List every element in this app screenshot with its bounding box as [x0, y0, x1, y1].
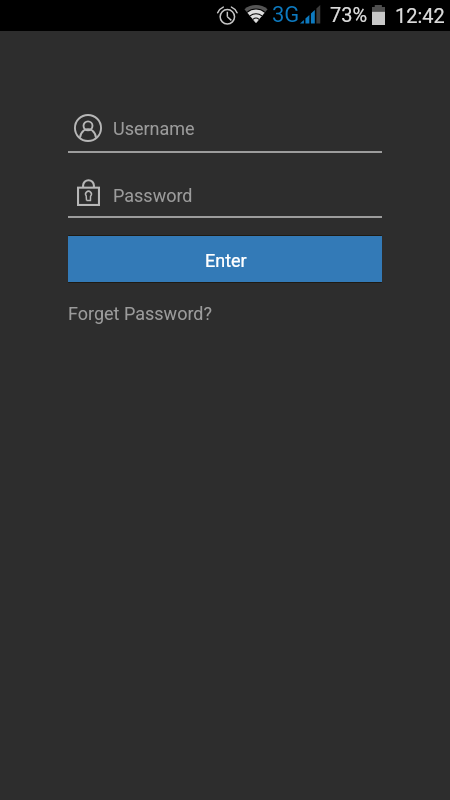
- other: Alarm set: [217, 5, 235, 25]
- other: Mobile signal: [300, 4, 321, 24]
- staticText: Forget Password?: [68, 303, 212, 324]
- staticText: 73%: [330, 3, 368, 26]
- button[interactable]: Password: [68, 171, 382, 219]
- staticText: Password: [113, 185, 193, 206]
- staticText: Enter: [205, 250, 247, 271]
- other: Battery 73 percent: [372, 5, 385, 25]
- button[interactable]: Enter: [68, 235, 382, 283]
- staticText: Username: [113, 118, 195, 139]
- staticText: 3G: [272, 2, 300, 28]
- button[interactable]: Forget Password?: [68, 299, 212, 328]
- button[interactable]: Username: [68, 105, 382, 153]
- other: Wi-Fi signal: [245, 5, 267, 23]
- staticText: 12:42: [395, 4, 445, 27]
